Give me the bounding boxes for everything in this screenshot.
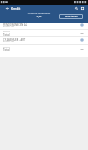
staticText: STATUS: [3, 46, 10, 49]
staticText: ENTITY NR: [3, 40, 14, 43]
button[interactable]: SEND MONEY: [59, 14, 83, 19]
button[interactable]: More options: [80, 6, 85, 11]
button[interactable]: [0, 22, 88, 29]
staticText: Kredit: [11, 7, 21, 11]
staticText: Total: [3, 48, 10, 52]
button[interactable]: [0, 45, 88, 52]
staticText: SEND MONEY: [65, 15, 78, 18]
staticText: CY-AVENUE8 - ART: [3, 38, 26, 42]
button[interactable]: [0, 37, 88, 44]
staticText: 0,00: [0, 15, 78, 18]
staticText: ENTITY NR: [3, 25, 14, 28]
button[interactable]: [0, 30, 88, 37]
staticText: PENDI-WINSCEN AL: [3, 23, 28, 27]
button[interactable]: Search: [74, 6, 79, 11]
staticText: Total: [3, 33, 10, 37]
staticText: Account Statement: [0, 11, 78, 14]
staticText: STATUS: [3, 30, 10, 33]
button[interactable]: Back: [5, 6, 10, 11]
